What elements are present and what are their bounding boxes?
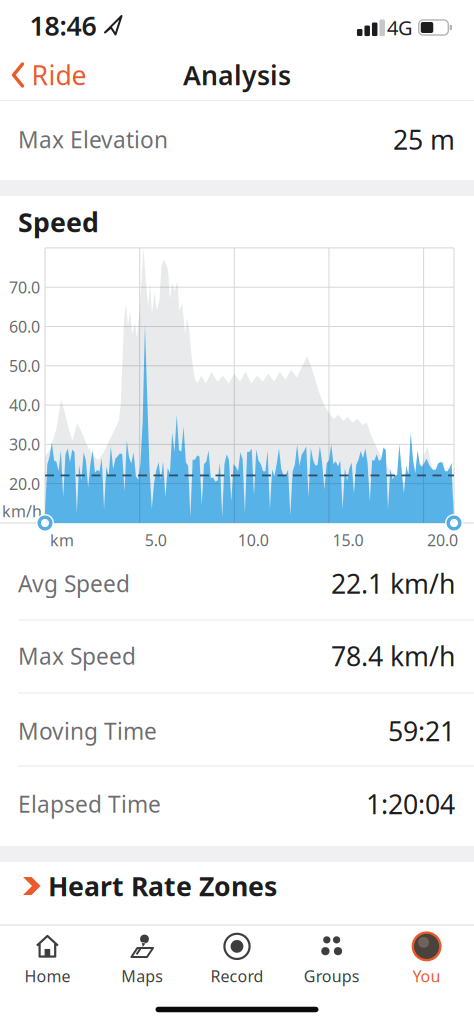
- staticText: Record: [210, 965, 263, 987]
- staticText: Speed: [18, 204, 99, 240]
- staticText: Max Speed: [18, 641, 136, 671]
- button[interactable]: Groups: [286, 928, 378, 990]
- button[interactable]: Home: [1, 928, 93, 990]
- staticText: Groups: [304, 965, 360, 987]
- staticText: Maps: [121, 965, 163, 987]
- button[interactable]: Ride: [11, 55, 86, 95]
- staticText: 59:21: [388, 713, 455, 749]
- staticText: 50.0: [9, 355, 40, 376]
- staticText: Avg Speed: [18, 568, 130, 598]
- staticText: 5.0: [145, 529, 167, 551]
- staticText: Moving Time: [18, 716, 157, 746]
- staticText: 70.0: [9, 277, 40, 298]
- staticText: 25 m: [393, 122, 455, 157]
- button[interactable]: You: [381, 928, 473, 990]
- staticText: Elapsed Time: [18, 789, 161, 819]
- staticText: 20.0: [9, 473, 40, 494]
- staticText: Analysis: [183, 57, 291, 93]
- staticText: km: [50, 529, 74, 551]
- staticText: Ride: [31, 57, 86, 93]
- staticText: 18:46: [29, 8, 96, 43]
- staticText: Heart Rate Zones: [48, 868, 277, 904]
- button[interactable]: Maps: [96, 928, 188, 990]
- staticText: 4G: [387, 14, 413, 41]
- staticText: 78.4 km/h: [331, 638, 455, 674]
- staticText: 60.0: [9, 316, 40, 337]
- staticText: Max Elevation: [18, 124, 168, 154]
- staticText: 30.0: [9, 434, 40, 455]
- staticText: 40.0: [9, 394, 40, 416]
- staticText: 22.1 km/h: [331, 566, 455, 601]
- staticText: 1:20:04: [366, 786, 455, 822]
- staticText: km/h: [2, 500, 42, 522]
- staticText: 20.0: [427, 529, 458, 551]
- staticText: 15.0: [332, 529, 363, 551]
- staticText: Home: [24, 965, 70, 987]
- staticText: You: [413, 965, 441, 987]
- staticText: 10.0: [238, 529, 269, 551]
- button[interactable]: Record: [191, 928, 283, 990]
